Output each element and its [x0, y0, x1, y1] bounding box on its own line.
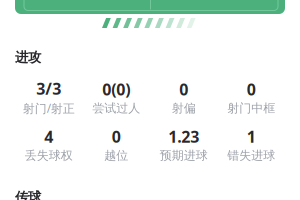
staticText: 射门/射正	[23, 100, 75, 116]
button[interactable]: 3/3	[15, 78, 82, 116]
staticText: 丢失球权	[25, 148, 73, 163]
button[interactable]: 0	[82, 126, 150, 163]
staticText: 0	[179, 79, 188, 100]
button[interactable]: 0(0)	[82, 79, 150, 116]
staticText: 进攻	[15, 49, 41, 65]
staticText: 0(0)	[102, 79, 130, 100]
staticText: 错失进球	[227, 148, 275, 163]
staticText: 0	[112, 126, 121, 147]
staticText: 预期进球	[160, 148, 208, 163]
button[interactable]: 0	[150, 79, 217, 116]
staticText: 4	[44, 126, 53, 147]
staticText: 1	[247, 126, 256, 147]
staticText: 传球	[15, 189, 41, 200]
staticText: 尝试过人	[92, 101, 140, 115]
staticText: 3/3	[36, 78, 61, 99]
button[interactable]: 传球	[15, 189, 41, 200]
button[interactable]: 1	[217, 126, 285, 163]
staticText: 0	[247, 79, 256, 100]
button[interactable]: 进攻	[15, 49, 41, 65]
button[interactable]: 4	[15, 126, 82, 163]
staticText: 射门中框	[227, 101, 275, 115]
button[interactable]: 比赛评分	[15, 0, 285, 14]
staticText: 越位	[104, 148, 128, 163]
staticText: 射偏	[172, 101, 196, 115]
staticText: 1.23	[168, 126, 199, 147]
button[interactable]: 1.23	[150, 126, 217, 163]
button[interactable]: 0	[217, 79, 285, 116]
